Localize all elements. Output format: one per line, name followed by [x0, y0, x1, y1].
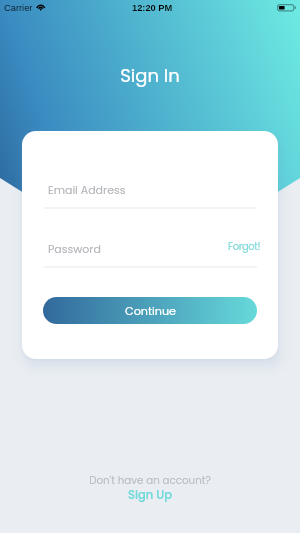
staticText: Continue: [125, 303, 177, 319]
button[interactable]: Password: [44, 231, 257, 268]
staticText: Carrier: [4, 3, 33, 13]
button[interactable]: Forgot!: [222, 235, 267, 257]
staticText: Password: [48, 241, 101, 256]
other: Wi-Fi signal: [35, 3, 47, 13]
button[interactable]: Email Address: [44, 172, 257, 209]
staticText: Forgot!: [228, 239, 261, 253]
staticText: 12:20 PM: [132, 3, 173, 13]
button[interactable]: Continue: [43, 297, 257, 324]
other: Battery: [277, 4, 296, 12]
staticText: Sign Up: [128, 487, 172, 503]
staticText: Don't have an account?: [0, 473, 300, 487]
staticText: Email Address: [48, 182, 126, 197]
staticText: Sign In: [0, 63, 300, 88]
button[interactable]: Sign Up: [118, 485, 182, 505]
